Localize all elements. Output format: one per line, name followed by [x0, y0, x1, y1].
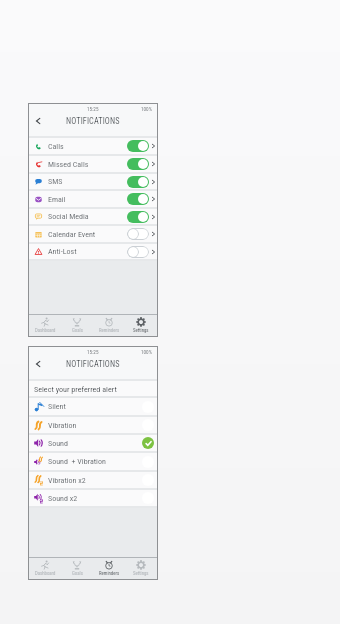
- button[interactable]: Back: [29, 358, 46, 369]
- button[interactable]: Toggle: [127, 176, 149, 188]
- button[interactable]: Email: [29, 191, 157, 207]
- staticText: Sound x2: [48, 494, 78, 503]
- button[interactable]: Dashboard: [29, 558, 61, 579]
- button[interactable]: Dashboard: [29, 315, 61, 336]
- staticText: NOTIFICATIONS: [66, 116, 120, 126]
- button[interactable]: Sound x2: [29, 490, 157, 506]
- button[interactable]: Toggle: [127, 246, 149, 258]
- staticText: Missed Calls: [48, 160, 89, 169]
- staticText: Sound: [48, 439, 68, 448]
- button[interactable]: SMS: [29, 174, 157, 189]
- button[interactable]: Toggle: [127, 211, 149, 223]
- button[interactable]: Sound: [29, 435, 157, 451]
- staticText: Settings: [133, 571, 149, 577]
- button[interactable]: Settings: [125, 315, 157, 336]
- button[interactable]: Toggle: [127, 193, 149, 205]
- button[interactable]: Settings: [125, 558, 157, 579]
- button[interactable]: Reminders: [93, 315, 125, 336]
- staticText: 15:25: [87, 349, 99, 355]
- button[interactable]: Social Media: [29, 209, 157, 224]
- staticText: Anti-Lost: [48, 247, 77, 256]
- staticText: Dashboard: [35, 571, 56, 577]
- staticText: Calls: [48, 142, 64, 151]
- button[interactable]: Vibration x2: [29, 472, 157, 488]
- button[interactable]: Goals: [61, 315, 93, 336]
- button[interactable]: Toggle: [127, 158, 149, 170]
- staticText: Silent: [48, 402, 66, 411]
- button[interactable]: Silent: [29, 398, 157, 415]
- button[interactable]: Sound + Vibration: [29, 453, 157, 470]
- button[interactable]: Calls: [29, 138, 157, 154]
- staticText: Select your preferred alert: [34, 384, 117, 393]
- staticText: Goals: [72, 571, 83, 577]
- staticText: Reminders: [99, 328, 120, 334]
- button[interactable]: Reminders: [93, 558, 125, 579]
- button[interactable]: Calendar Event: [29, 226, 157, 242]
- staticText: Email: [48, 195, 66, 204]
- staticText: Dashboard: [35, 328, 56, 334]
- staticText: Social Media: [48, 212, 89, 221]
- staticText: SMS: [48, 177, 63, 186]
- staticText: 15:25: [87, 106, 99, 112]
- button[interactable]: Vibration: [29, 417, 157, 433]
- staticText: Sound + Vibration: [48, 457, 106, 466]
- staticText: Goals: [72, 328, 83, 334]
- button[interactable]: Toggle: [127, 140, 149, 152]
- staticText: Vibration: [48, 421, 77, 430]
- button[interactable]: Missed Calls: [29, 156, 157, 172]
- staticText: 100%: [141, 349, 152, 355]
- button[interactable]: Sound: [142, 437, 154, 449]
- staticText: 100%: [141, 106, 152, 112]
- staticText: NOTIFICATIONS: [66, 359, 120, 369]
- staticText: Vibration x2: [48, 476, 86, 485]
- button[interactable]: Anti-Lost: [29, 244, 157, 259]
- button[interactable]: Goals: [61, 558, 93, 579]
- staticText: Settings: [133, 328, 149, 334]
- staticText: Calendar Event: [48, 230, 96, 239]
- staticText: Reminders: [99, 571, 120, 577]
- button[interactable]: Back: [29, 115, 46, 126]
- button[interactable]: Toggle: [127, 228, 149, 240]
